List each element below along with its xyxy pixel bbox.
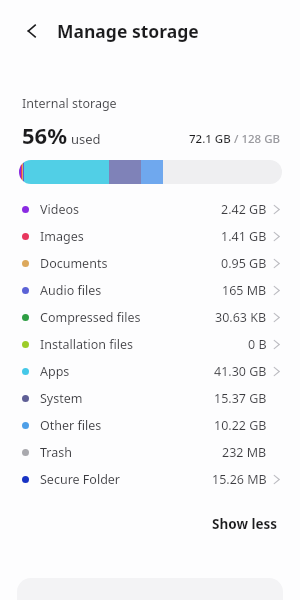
staticText: Trash [40, 444, 72, 461]
staticText: 41.30 GB [214, 363, 267, 380]
button[interactable]: Videos [0, 196, 300, 223]
staticText: / 128 GB [234, 131, 281, 147]
staticText: 232 MB [222, 444, 267, 461]
button[interactable]: Installation files [0, 331, 300, 358]
staticText: Other files [40, 417, 102, 434]
staticText: Documents [40, 255, 108, 272]
staticText: 56% [22, 120, 68, 150]
staticText: Manage storage [57, 19, 199, 43]
staticText: used [71, 130, 101, 148]
staticText: 72.1 GB [189, 131, 231, 147]
staticText: Audio files [40, 282, 102, 299]
staticText: Secure Folder [40, 471, 121, 488]
button[interactable]: Audio files [0, 277, 300, 304]
staticText: Installation files [40, 336, 134, 353]
staticText: System [40, 390, 83, 407]
staticText: 2.42 GB [221, 201, 267, 218]
staticText: Apps [40, 363, 70, 380]
button[interactable]: Trash [0, 439, 300, 466]
button[interactable]: Documents [0, 250, 300, 277]
staticText: 1.41 GB [221, 228, 267, 245]
button[interactable]: Other files [0, 412, 300, 439]
staticText: 165 MB [222, 282, 267, 299]
button[interactable]: System [0, 385, 300, 412]
button[interactable]: Images [0, 223, 300, 250]
staticText: 0 B [248, 336, 267, 353]
button[interactable]: Show less [190, 509, 300, 539]
staticText: Images [40, 228, 84, 245]
staticText: Show less [212, 515, 278, 533]
staticText: 0.95 GB [221, 255, 267, 272]
staticText: 10.22 GB [214, 417, 267, 434]
button[interactable]: Secure Folder [0, 466, 300, 493]
staticText: Internal storage [22, 95, 117, 112]
staticText: 15.37 GB [214, 390, 267, 407]
button[interactable]: Apps [0, 358, 300, 385]
staticText: 30.63 KB [215, 309, 267, 326]
staticText: Compressed files [40, 309, 141, 326]
button[interactable]: Back [20, 18, 46, 44]
staticText: Videos [40, 201, 80, 218]
button[interactable]: Compressed files [0, 304, 300, 331]
staticText: 15.26 MB [212, 471, 267, 488]
